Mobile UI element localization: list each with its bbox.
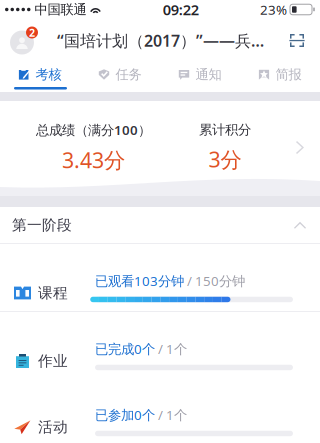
staticText: 总成绩（满分100） xyxy=(36,121,151,139)
staticText: 简报 xyxy=(275,66,301,83)
button[interactable]: Scan xyxy=(281,24,320,56)
button[interactable]: 考核 xyxy=(0,61,80,87)
staticText: 活动 xyxy=(38,418,68,436)
staticText: 已观看103分钟 xyxy=(95,272,184,290)
staticText: / 1个 xyxy=(155,340,187,358)
staticText: 中国联通 xyxy=(34,1,86,18)
button[interactable]: 作业 xyxy=(0,312,320,379)
staticText: 考核 xyxy=(35,66,61,83)
button[interactable]: 第一阶段 xyxy=(0,207,320,243)
button[interactable]: 简报 xyxy=(240,61,320,87)
button[interactable]: 总成绩（满分100） xyxy=(0,101,320,196)
staticText: 累计积分 xyxy=(199,122,251,138)
staticText: 通知 xyxy=(195,66,221,83)
button[interactable]: 通知 xyxy=(160,61,240,87)
button[interactable]: 课程 xyxy=(0,244,320,311)
staticText: 作业 xyxy=(38,352,68,370)
button[interactable]: 活动 xyxy=(0,378,320,443)
staticText: / 150分钟 xyxy=(184,272,245,290)
staticText: 3分 xyxy=(208,145,241,173)
staticText: 课程 xyxy=(38,284,68,302)
button[interactable]: Profile xyxy=(0,24,40,56)
button[interactable]: 任务 xyxy=(80,61,160,87)
staticText: 3.43分 xyxy=(62,146,125,174)
staticText: 23% xyxy=(260,1,287,18)
staticText: 任务 xyxy=(115,66,141,83)
staticText: 已完成0个 xyxy=(95,340,155,358)
staticText: / 1个 xyxy=(155,406,187,424)
staticText: “国培计划（2017）”——兵… xyxy=(57,30,264,51)
staticText: 已参加0个 xyxy=(95,406,155,424)
staticText: 2 xyxy=(29,25,35,40)
staticText: 09:22 xyxy=(163,0,199,19)
staticText: 第一阶段 xyxy=(12,216,72,234)
